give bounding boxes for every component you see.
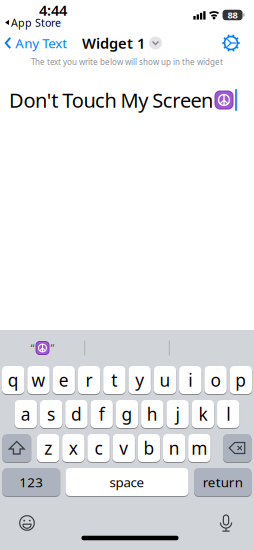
button[interactable]: a bbox=[15, 400, 37, 428]
staticText: ” bbox=[50, 341, 54, 355]
button[interactable]: Dictation bbox=[209, 506, 243, 540]
button[interactable]: Shift bbox=[2, 434, 31, 462]
staticText: p bbox=[235, 368, 246, 391]
button[interactable]: e bbox=[53, 366, 75, 394]
button[interactable]: m bbox=[188, 434, 210, 462]
button[interactable]: g bbox=[116, 400, 138, 428]
button[interactable]: x bbox=[62, 434, 84, 462]
button[interactable]: u bbox=[154, 366, 176, 394]
button[interactable]: s bbox=[40, 400, 62, 428]
staticText: Any Text bbox=[15, 34, 67, 52]
staticText: w bbox=[31, 368, 45, 391]
button[interactable]: o bbox=[204, 366, 227, 394]
button[interactable]: i bbox=[179, 366, 201, 394]
staticText: space bbox=[109, 473, 144, 491]
button[interactable]: b bbox=[138, 434, 160, 462]
button[interactable]: Emoji bbox=[10, 506, 44, 540]
button[interactable]: n bbox=[163, 434, 185, 462]
button[interactable]: p bbox=[230, 366, 252, 394]
staticText: f bbox=[99, 402, 105, 425]
button[interactable]: Delete bbox=[223, 434, 251, 462]
staticText: Widget 1 bbox=[82, 33, 145, 53]
button[interactable]: 123 bbox=[2, 468, 60, 496]
staticText: 123 bbox=[19, 473, 43, 491]
staticText: Don't Touch My Screen bbox=[9, 87, 213, 113]
button[interactable]: c bbox=[87, 434, 110, 462]
staticText: z bbox=[44, 436, 52, 459]
staticText: n bbox=[169, 436, 180, 459]
staticText: t bbox=[111, 368, 117, 391]
button[interactable]: return bbox=[194, 468, 251, 496]
staticText: c bbox=[95, 436, 103, 459]
button[interactable]: Suggestion peace emoji bbox=[0, 330, 84, 366]
button[interactable]: y bbox=[128, 366, 151, 394]
staticText: q bbox=[8, 368, 19, 391]
button[interactable]: Back to Any Text bbox=[5, 34, 67, 52]
staticText: m bbox=[191, 436, 207, 459]
button[interactable]: l bbox=[217, 400, 239, 428]
button[interactable]: z bbox=[37, 434, 59, 462]
staticText: g bbox=[121, 402, 132, 425]
staticText: l bbox=[226, 402, 230, 425]
button[interactable]: Settings bbox=[219, 31, 243, 55]
staticText: x bbox=[69, 436, 78, 459]
staticText: s bbox=[47, 402, 55, 425]
staticText: j bbox=[176, 402, 180, 425]
staticText: e bbox=[59, 368, 69, 391]
staticText: v bbox=[119, 436, 128, 459]
button[interactable]: Don't Touch My Screen bbox=[0, 86, 254, 114]
button[interactable]: v bbox=[113, 434, 135, 462]
staticText: The text you write below will show up in… bbox=[31, 57, 223, 67]
button[interactable]: Return to App Store bbox=[5, 15, 61, 30]
button[interactable]: f bbox=[90, 400, 113, 428]
staticText: u bbox=[159, 368, 170, 391]
button[interactable]: k bbox=[192, 400, 214, 428]
button[interactable]: space bbox=[65, 468, 188, 496]
staticText: return bbox=[203, 473, 243, 491]
staticText: k bbox=[198, 402, 207, 425]
button[interactable]: w bbox=[27, 366, 50, 394]
button[interactable]: q bbox=[2, 366, 24, 394]
button[interactable]: j bbox=[166, 400, 189, 428]
staticText: o bbox=[211, 368, 221, 391]
staticText: 4:44 bbox=[39, 0, 67, 20]
staticText: h bbox=[147, 402, 158, 425]
button[interactable]: h bbox=[141, 400, 163, 428]
staticText: i bbox=[188, 368, 192, 391]
button[interactable]: r bbox=[78, 366, 100, 394]
staticText: r bbox=[85, 368, 92, 391]
button[interactable]: Widget 1 menu bbox=[82, 33, 162, 53]
staticText: App Store bbox=[11, 15, 61, 30]
staticText: y bbox=[135, 368, 144, 391]
staticText: b bbox=[143, 436, 154, 459]
staticText: d bbox=[71, 402, 82, 425]
button[interactable]: t bbox=[103, 366, 125, 394]
button[interactable]: d bbox=[65, 400, 87, 428]
staticText: “ bbox=[30, 341, 34, 355]
staticText: 88 bbox=[227, 9, 237, 21]
staticText: a bbox=[21, 402, 31, 425]
